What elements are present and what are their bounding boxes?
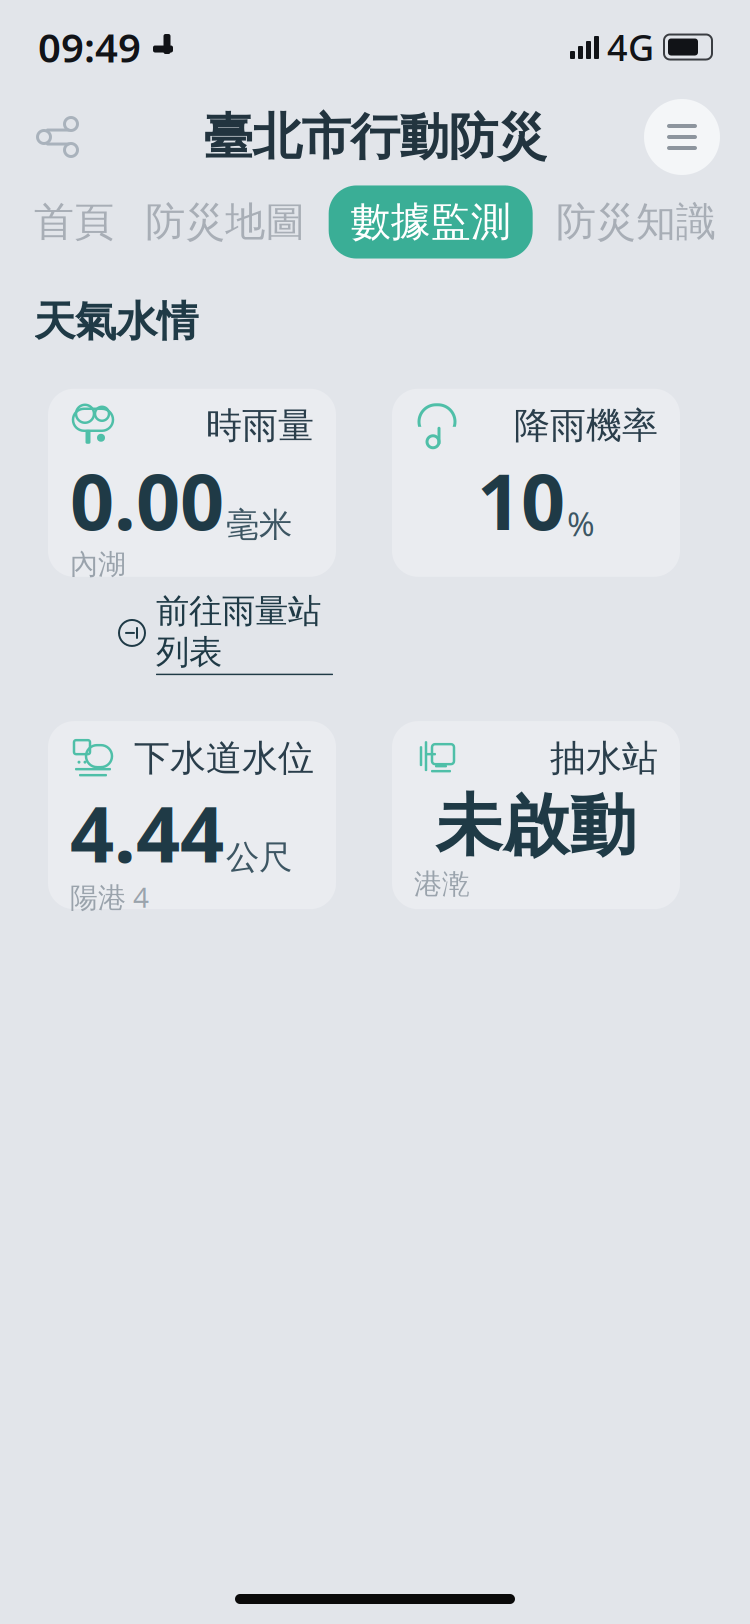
- staticText: 臺北市行動防災: [203, 107, 546, 167]
- staticText: 未啟動: [435, 785, 636, 867]
- button[interactable]: 時雨量: [48, 389, 336, 577]
- staticText: 公尺: [226, 837, 292, 878]
- staticText: 下水道水位: [134, 736, 314, 780]
- button[interactable]: 防災知識: [548, 185, 724, 258]
- button[interactable]: 降雨機率: [392, 389, 680, 577]
- button[interactable]: 分享: [28, 107, 88, 167]
- staticText: 首頁: [34, 197, 114, 246]
- staticText: 防災地圖: [145, 197, 305, 246]
- staticText: 數據監測: [351, 197, 511, 246]
- staticText: 抽水站: [550, 736, 658, 780]
- staticText: 防災知識: [556, 197, 716, 246]
- staticText: 時雨量: [206, 404, 314, 448]
- staticText: 天氣水情: [34, 296, 198, 347]
- button[interactable]: 選單: [642, 97, 722, 177]
- staticText: 陽港 4: [70, 878, 149, 915]
- button[interactable]: 空氣品質指標 AQI: [48, 1511, 680, 1615]
- button[interactable]: 防災地圖: [137, 185, 313, 258]
- button[interactable]: 前往雨量站列表: [118, 591, 333, 675]
- button[interactable]: 抽水站: [392, 721, 680, 909]
- staticText: 港漧: [414, 867, 470, 901]
- button[interactable]: 數據監測: [329, 185, 533, 258]
- staticText: %: [567, 501, 595, 545]
- staticText: 0.00: [70, 449, 224, 551]
- button[interactable]: 首頁: [26, 185, 122, 258]
- staticText: 內湖: [70, 547, 126, 582]
- staticText: 前往雨量站列表: [156, 591, 321, 673]
- staticText: 毫米: [226, 504, 292, 545]
- staticText: 降雨機率: [514, 404, 658, 448]
- staticText: 10: [477, 449, 565, 551]
- staticText: 4G: [607, 23, 654, 71]
- button[interactable]: 下水道水位: [48, 721, 336, 909]
- staticText: 09:49: [38, 20, 141, 73]
- staticText: 4.44: [70, 781, 224, 884]
